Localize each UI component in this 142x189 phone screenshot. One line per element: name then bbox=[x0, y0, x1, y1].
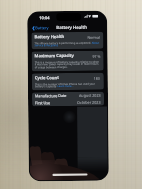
button[interactable]: First Use bbox=[32, 99, 104, 106]
button[interactable]: Battery bbox=[32, 25, 49, 30]
staticText: Battery bbox=[35, 25, 49, 30]
staticText: This is a measure of battery capacity re… bbox=[35, 60, 101, 69]
staticText: August 2023 bbox=[79, 93, 101, 98]
staticText: This is the number of times iPhone has u… bbox=[35, 82, 101, 88]
button[interactable]: Battery Health bbox=[31, 32, 103, 49]
staticText: Battery Health bbox=[56, 24, 87, 30]
staticText: 183 bbox=[94, 76, 101, 81]
staticText: Normal bbox=[87, 35, 100, 40]
staticText: Battery Health bbox=[34, 34, 64, 40]
staticText: This iPhone battery is performing as exp… bbox=[34, 41, 100, 47]
staticText: 97 % bbox=[93, 54, 101, 59]
staticText: 10:04 bbox=[39, 15, 50, 20]
button[interactable]: Cycle Count bbox=[32, 73, 104, 90]
staticText: October 2023 bbox=[77, 100, 101, 105]
staticText: Cycle Count bbox=[35, 75, 60, 81]
staticText: Maximum Capacity bbox=[35, 53, 75, 59]
button[interactable]: Manufacture Date bbox=[32, 92, 104, 99]
staticText: First Use bbox=[35, 100, 50, 105]
staticText: Manufacture Date bbox=[35, 93, 67, 98]
button[interactable]: Maximum Capacity bbox=[31, 51, 104, 71]
